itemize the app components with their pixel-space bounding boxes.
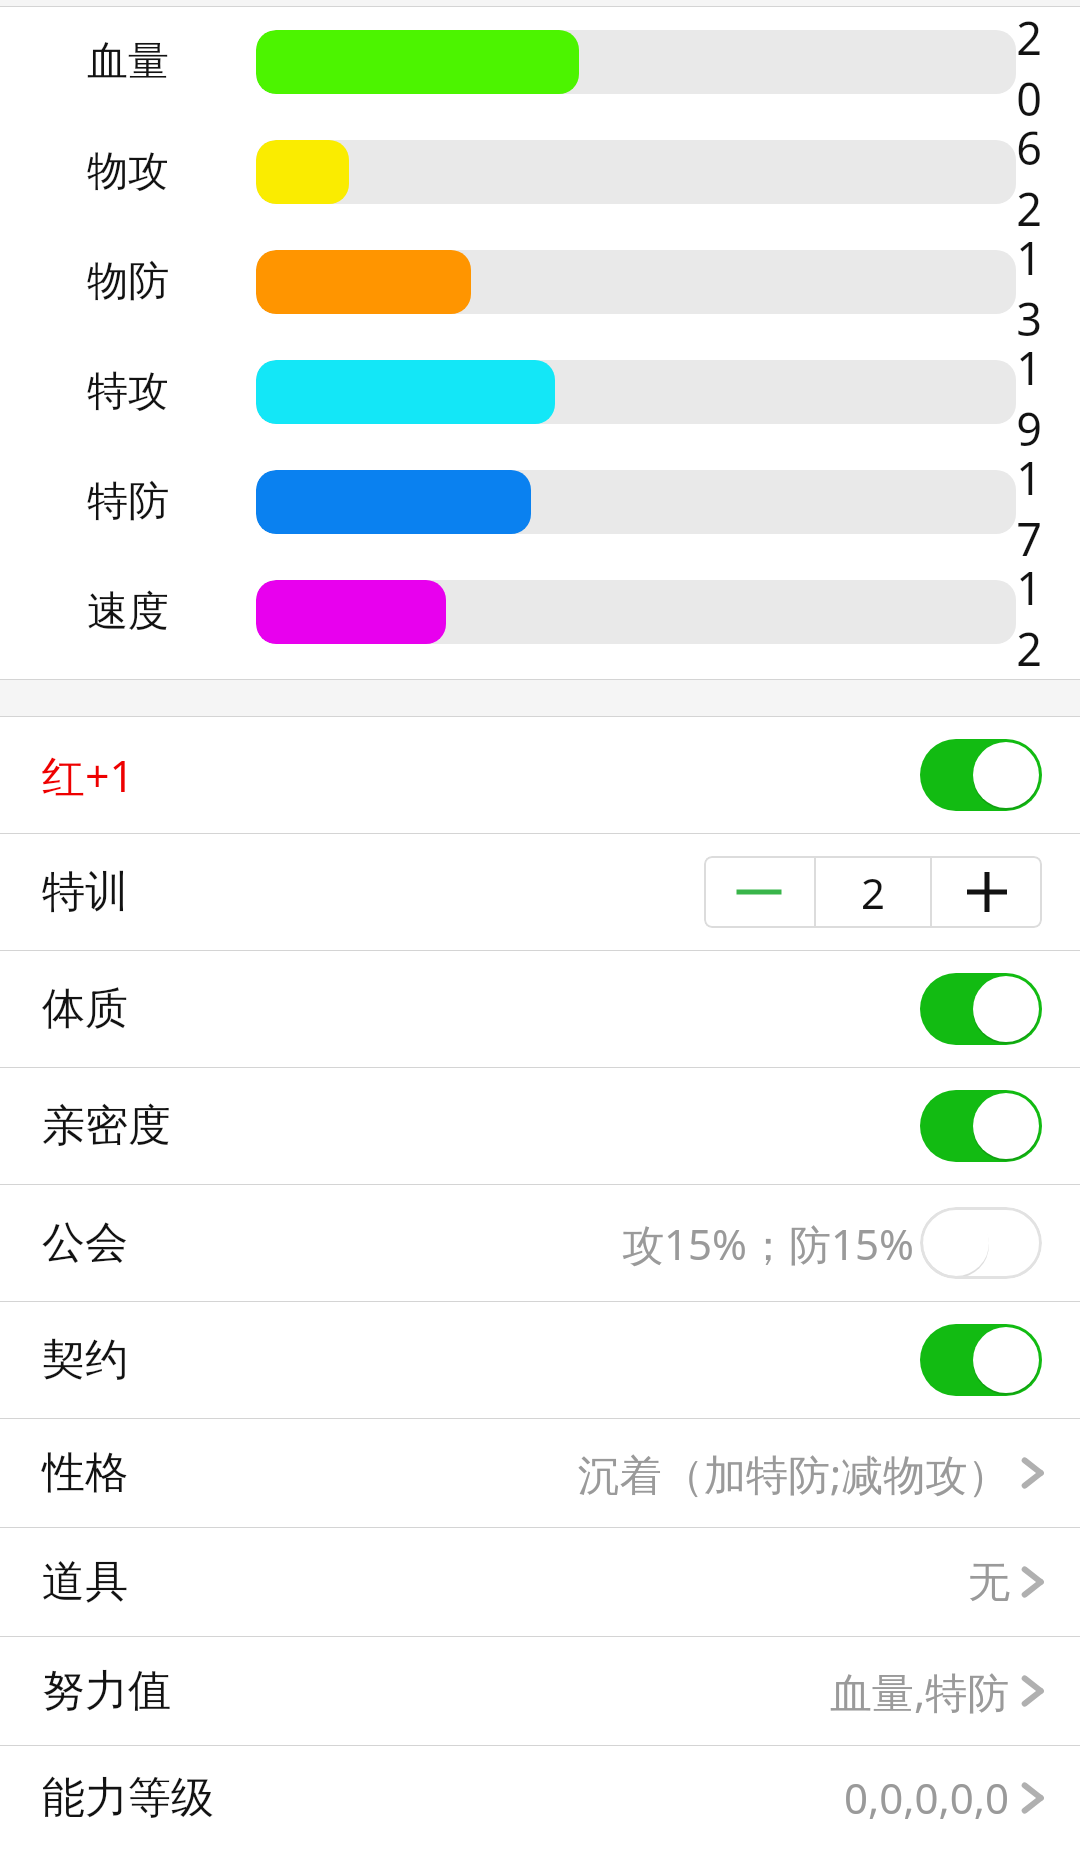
staticText: 血量,特防 xyxy=(830,1663,1010,1720)
staticText: 17831 xyxy=(1016,447,1042,557)
button[interactable]: 血量 xyxy=(0,7,1080,117)
button[interactable]: 能力等级 xyxy=(0,1746,1080,1849)
staticText: 6212 xyxy=(1016,117,1042,227)
staticText: 速度 xyxy=(87,586,169,638)
staticText: 攻15%；防15% xyxy=(622,1215,914,1272)
staticText: 20937 xyxy=(1016,7,1042,117)
staticText: 体质 xyxy=(42,982,128,1036)
staticText: 13920 xyxy=(1016,227,1042,337)
staticText: 沉着（加特防;减物攻） xyxy=(578,1445,1010,1502)
staticText: 契约 xyxy=(42,1333,128,1387)
button[interactable]: Toggle on xyxy=(920,1090,1042,1162)
staticText: 公会 xyxy=(42,1216,128,1270)
staticText: 2 xyxy=(861,864,886,921)
staticText: 能力等级 xyxy=(42,1771,214,1825)
button[interactable]: 物攻 xyxy=(0,117,1080,227)
staticText: 道具 xyxy=(42,1555,128,1609)
button[interactable]: 契约 xyxy=(0,1302,1080,1418)
button[interactable]: 特攻 xyxy=(0,337,1080,447)
button[interactable]: 体质 xyxy=(0,951,1080,1067)
staticText: 物防 xyxy=(87,256,169,308)
staticText: 亲密度 xyxy=(42,1099,171,1153)
button[interactable]: Toggle on xyxy=(920,739,1042,811)
staticText: 12308 xyxy=(1016,557,1042,667)
staticText: 红+1 xyxy=(42,746,135,805)
button[interactable]: 努力值 xyxy=(0,1637,1080,1745)
button[interactable]: 性格 xyxy=(0,1419,1080,1527)
button[interactable]: 物防 xyxy=(0,227,1080,337)
button[interactable]: 亲密度 xyxy=(0,1068,1080,1184)
button[interactable]: 公会 xyxy=(0,1185,1080,1301)
staticText: 物攻 xyxy=(87,146,169,198)
staticText: 特防 xyxy=(87,476,169,528)
button[interactable]: Increase xyxy=(932,856,1042,928)
staticText: 0,0,0,0,0 xyxy=(844,1769,1010,1826)
button[interactable]: Toggle off xyxy=(920,1207,1042,1279)
staticText: 特训 xyxy=(42,865,128,919)
button[interactable]: Toggle on xyxy=(920,973,1042,1045)
staticText: 19457 xyxy=(1016,337,1042,447)
button[interactable]: 道具 xyxy=(0,1528,1080,1636)
staticText: 无 xyxy=(968,1556,1010,1609)
button[interactable]: 特防 xyxy=(0,447,1080,557)
staticText: 努力值 xyxy=(42,1664,171,1718)
staticText: 特攻 xyxy=(87,366,169,418)
staticText: 血量 xyxy=(87,36,169,88)
button[interactable]: 红+1 xyxy=(0,717,1080,833)
button[interactable]: Decrease xyxy=(704,856,814,928)
staticText: 性格 xyxy=(42,1446,128,1500)
button[interactable]: Toggle on xyxy=(920,1324,1042,1396)
button[interactable]: 速度 xyxy=(0,557,1080,667)
